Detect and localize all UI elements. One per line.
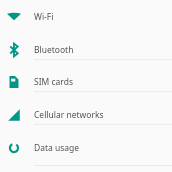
button[interactable]: SIM cards (0, 65, 172, 98)
other: Cellular networks (6, 107, 22, 123)
button[interactable]: Cellular networks (0, 98, 172, 131)
other: Wi-Fi (6, 9, 22, 25)
other: Bluetooth (6, 42, 22, 58)
button[interactable]: Wi-Fi (0, 0, 172, 33)
staticText: Data usage (34, 142, 80, 154)
other: Data usage (6, 140, 22, 156)
button[interactable]: Bluetooth (0, 33, 172, 66)
staticText: Wi-Fi (34, 11, 54, 23)
other: SIM cards (6, 74, 22, 90)
staticText: SIM cards (34, 76, 73, 88)
button[interactable]: Data usage (0, 131, 172, 164)
staticText: Bluetooth (34, 44, 74, 56)
staticText: Cellular networks (34, 109, 104, 121)
